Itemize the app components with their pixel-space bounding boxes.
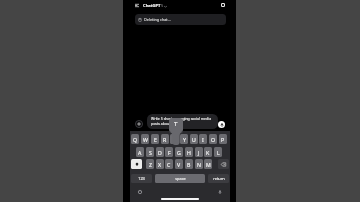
- staticText: J: [198, 149, 200, 156]
- button[interactable]: G: [175, 147, 183, 157]
- staticText: S: [149, 149, 152, 156]
- button[interactable]: T: [170, 134, 178, 144]
- staticText: O: [211, 136, 216, 143]
- staticText: 5: [161, 3, 164, 9]
- button[interactable]: New chat: [218, 2, 227, 11]
- staticText: W: [143, 136, 148, 143]
- staticText: return: [213, 176, 225, 181]
- staticText: K: [206, 149, 210, 156]
- button[interactable]: A: [136, 147, 144, 157]
- button[interactable]: U: [190, 134, 198, 144]
- button[interactable]: space: [155, 174, 205, 183]
- button[interactable]: X: [156, 159, 164, 169]
- button[interactable]: C: [165, 159, 173, 169]
- staticText: Write 5 short, engaging social media pos…: [151, 116, 215, 126]
- button[interactable]: M: [204, 159, 212, 169]
- button[interactable]: K: [204, 147, 212, 157]
- button[interactable]: Shift: [131, 159, 142, 169]
- staticText: ChatGPT: [143, 3, 161, 9]
- staticText: H: [187, 149, 191, 156]
- button[interactable]: Y: [180, 134, 188, 144]
- button[interactable]: E: [151, 134, 159, 144]
- button[interactable]: S: [146, 147, 154, 157]
- button[interactable]: Send: [218, 121, 225, 128]
- staticText: I: [202, 136, 204, 143]
- button[interactable]: Z: [146, 159, 154, 169]
- staticText: M: [206, 161, 211, 168]
- staticText: U: [192, 136, 196, 143]
- staticText: Z: [149, 161, 152, 168]
- button[interactable]: V: [175, 159, 183, 169]
- staticText: E: [154, 136, 157, 143]
- staticText: B: [187, 161, 191, 168]
- button[interactable]: L: [214, 147, 222, 157]
- button[interactable]: R: [161, 134, 169, 144]
- staticText: V: [177, 161, 181, 168]
- staticText: T: [174, 120, 178, 126]
- staticText: C: [167, 161, 171, 168]
- button[interactable]: Emoji: [136, 188, 144, 196]
- staticText: space: [175, 176, 186, 181]
- button[interactable]: Deleting chat…: [135, 14, 226, 25]
- staticText: X: [158, 161, 162, 168]
- button[interactable]: Open menu: [132, 2, 141, 11]
- button[interactable]: Backspace: [218, 159, 229, 169]
- button[interactable]: 123: [131, 174, 152, 183]
- staticText: R: [163, 136, 167, 143]
- button[interactable]: Dictate: [216, 188, 224, 196]
- button[interactable]: Write 5 short, engaging social media pos…: [147, 114, 218, 129]
- button[interactable]: O: [209, 134, 217, 144]
- staticText: 123: [138, 176, 145, 181]
- button[interactable]: W: [141, 134, 149, 144]
- staticText: D: [158, 149, 162, 156]
- staticText: G: [177, 149, 181, 156]
- button[interactable]: N: [195, 159, 203, 169]
- button[interactable]: P: [219, 134, 227, 144]
- staticText: Q: [133, 136, 138, 143]
- staticText: A: [138, 149, 142, 156]
- button[interactable]: J: [195, 147, 203, 157]
- staticText: N: [197, 161, 201, 168]
- button[interactable]: D: [156, 147, 164, 157]
- button[interactable]: Q: [131, 134, 139, 144]
- staticText: P: [221, 136, 225, 143]
- staticText: Deleting chat…: [144, 17, 171, 22]
- staticText: L: [217, 149, 220, 156]
- button[interactable]: I: [199, 134, 207, 144]
- button[interactable]: H: [185, 147, 193, 157]
- button[interactable]: return: [208, 174, 229, 183]
- button[interactable]: B: [185, 159, 193, 169]
- staticText: Y: [183, 136, 186, 143]
- button[interactable]: F: [165, 147, 173, 157]
- button[interactable]: Add attachment: [135, 120, 143, 128]
- staticText: F: [168, 149, 171, 156]
- button[interactable]: ChatGPT: [143, 3, 167, 9]
